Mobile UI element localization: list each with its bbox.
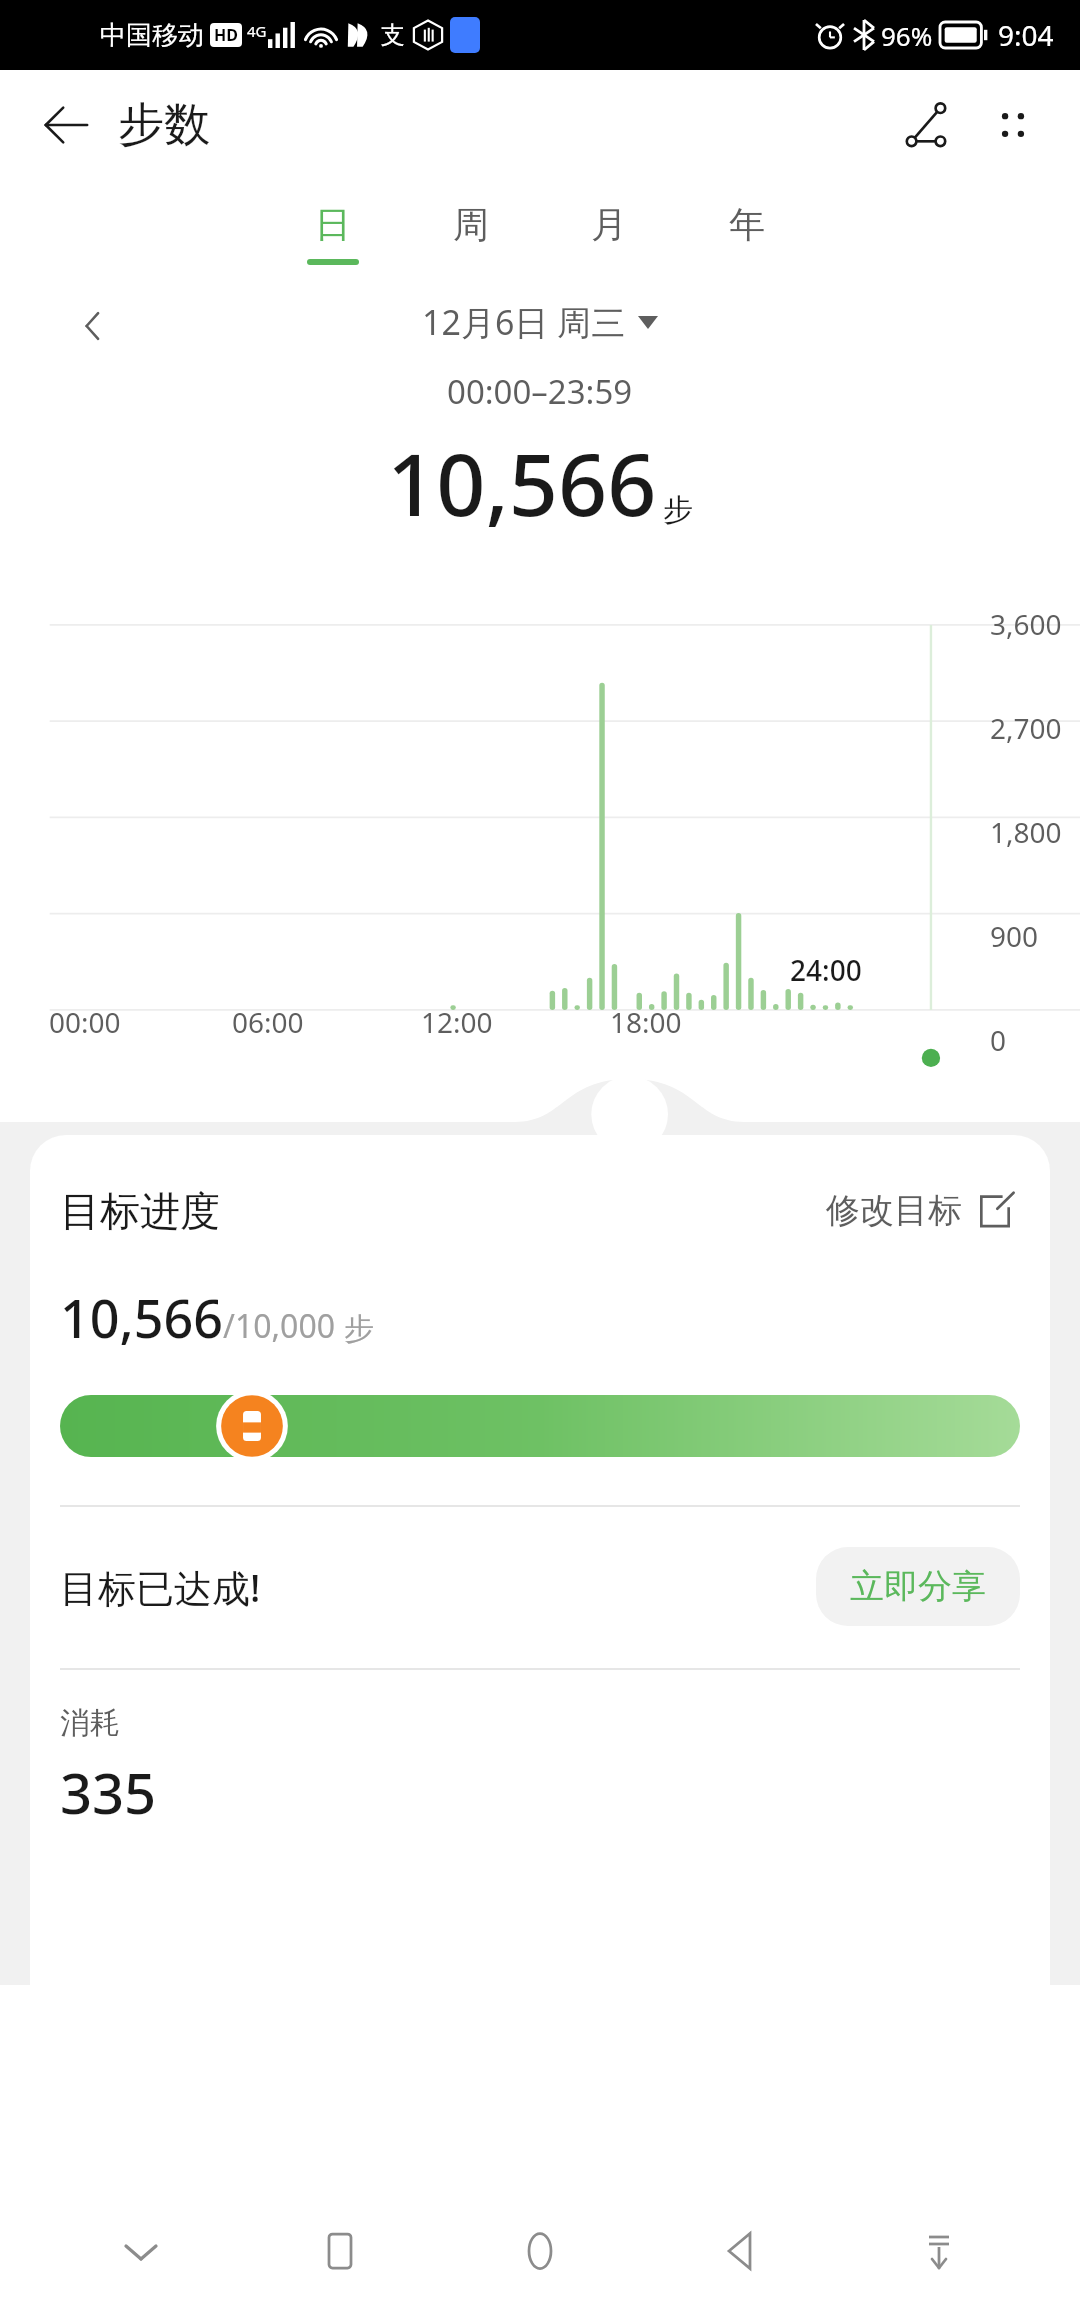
staticText: 10,566 xyxy=(60,1282,223,1353)
staticText: 消耗 xyxy=(60,1704,120,1742)
staticText: 18:00 xyxy=(610,1003,682,1041)
staticText: 96% xyxy=(881,18,933,53)
staticText: 900 xyxy=(990,917,1039,955)
staticText: 修改目标 xyxy=(826,1189,962,1232)
staticText: 00:00 xyxy=(49,1003,121,1041)
staticText: 目标进度 xyxy=(60,1186,220,1236)
staticText: 06:00 xyxy=(232,1003,304,1041)
staticText: HD xyxy=(214,24,238,46)
button[interactable]: 立即分享 xyxy=(816,1547,1020,1626)
staticText: 周 xyxy=(453,202,489,247)
staticText: 月 xyxy=(591,202,627,247)
staticText: 10,566 xyxy=(387,424,657,541)
staticText: 步 xyxy=(663,491,693,529)
button[interactable]: Hide keyboard xyxy=(82,2192,200,2310)
staticText: 步数 xyxy=(118,96,210,154)
button[interactable]: Recents xyxy=(281,2192,399,2310)
button[interactable]: More options xyxy=(972,84,1054,166)
staticText: 0 xyxy=(990,1021,1007,1055)
button[interactable]: Scroll to bottom xyxy=(880,2192,998,2310)
staticText: 年 xyxy=(729,202,765,247)
button[interactable]: 12月6日 周三 xyxy=(422,299,658,345)
button[interactable]: 周 xyxy=(402,180,540,285)
staticText: 4G xyxy=(247,21,267,41)
button[interactable]: Previous day xyxy=(58,291,128,361)
button[interactable]: Share xyxy=(880,79,972,171)
staticText: 中国移动 xyxy=(100,19,204,52)
staticText: 日 xyxy=(315,202,351,247)
staticText: 00:00–23:59 xyxy=(447,369,633,414)
staticText: /10,000 xyxy=(223,1304,344,1348)
staticText: 步 xyxy=(344,1310,374,1348)
staticText: 立即分享 xyxy=(850,1565,986,1608)
staticText: 9:04 xyxy=(998,16,1054,54)
button[interactable]: 日 xyxy=(264,180,402,285)
button[interactable]: 年 xyxy=(678,180,816,285)
staticText: 目标已达成! xyxy=(60,1561,261,1613)
staticText: 12月6日 周三 xyxy=(422,299,626,345)
button[interactable]: 月 xyxy=(540,180,678,285)
staticText: 3,600 xyxy=(990,605,1062,643)
button[interactable]: 修改目标 xyxy=(820,1183,1020,1238)
staticText: 335 xyxy=(60,1754,157,1830)
staticText: 1,800 xyxy=(990,813,1062,851)
staticText: 2,700 xyxy=(990,709,1062,747)
button[interactable]: Back xyxy=(28,87,104,163)
staticText: 支 xyxy=(381,20,405,50)
staticText: 12:00 xyxy=(421,1003,493,1041)
button[interactable]: Back xyxy=(681,2192,799,2310)
staticText: 24:00 xyxy=(790,951,862,989)
button[interactable]: Home xyxy=(481,2192,599,2310)
